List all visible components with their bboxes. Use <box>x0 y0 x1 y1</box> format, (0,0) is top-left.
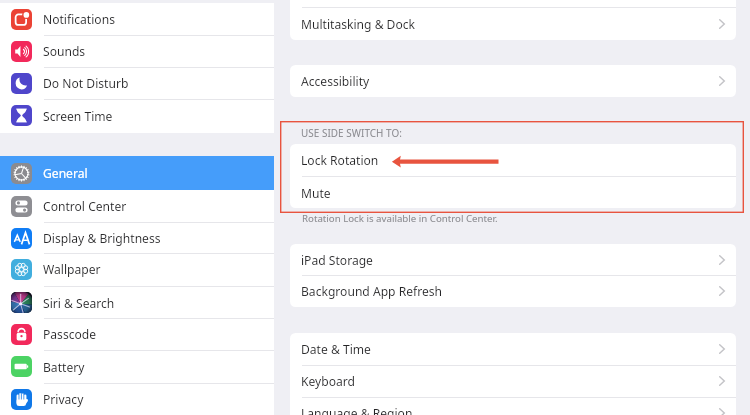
staticText: Wallpaper <box>43 261 101 277</box>
staticText: Accessibility <box>301 73 370 89</box>
staticText: Rotation Lock is available in Control Ce… <box>302 212 498 225</box>
button[interactable]: Passcode <box>0 318 274 350</box>
staticText: Multitasking & Dock <box>301 16 416 32</box>
staticText: Date & Time <box>301 341 371 357</box>
button[interactable]: iPad Storage <box>290 244 736 275</box>
button[interactable]: Display & Brightness <box>0 222 274 254</box>
staticText: Keyboard <box>301 373 355 389</box>
staticText: Language & Region <box>301 405 413 415</box>
button[interactable]: Keyboard <box>290 365 736 397</box>
staticText: Sounds <box>43 43 86 59</box>
button[interactable]: Accessibility <box>290 65 736 97</box>
button[interactable]: Lock Rotation <box>290 144 736 176</box>
staticText: USE SIDE SWITCH TO: <box>301 126 402 139</box>
button[interactable]: Date & Time <box>290 333 736 365</box>
staticText: Passcode <box>43 326 97 342</box>
staticText: Notifications <box>43 11 115 27</box>
staticText: Screen Time <box>43 108 113 124</box>
button[interactable]: Multitasking & Dock <box>290 7 736 40</box>
staticText: Siri & Search <box>43 295 115 311</box>
staticText: Control Center <box>43 198 127 214</box>
button[interactable]: Background App Refresh <box>290 275 736 307</box>
staticText: Mute <box>301 185 331 201</box>
button[interactable]: Screen Time <box>0 99 274 132</box>
button[interactable]: Notifications <box>0 3 274 35</box>
other: Callout arrow <box>388 153 502 171</box>
staticText: iPad Storage <box>301 252 373 268</box>
button[interactable]: Do Not Disturb <box>0 67 274 99</box>
staticText: Privacy <box>43 391 84 407</box>
button[interactable]: Wallpaper <box>0 253 274 285</box>
staticText: Background App Refresh <box>301 283 443 299</box>
staticText: Display & Brightness <box>43 230 161 246</box>
button[interactable]: Control Center <box>0 190 274 222</box>
button[interactable]: Sounds <box>0 35 274 67</box>
staticText: Lock Rotation <box>301 152 379 168</box>
button[interactable]: Battery <box>0 350 274 383</box>
staticText: Do Not Disturb <box>43 75 129 91</box>
button[interactable]: Language & Region <box>290 397 736 415</box>
staticText: General <box>43 165 88 181</box>
button[interactable]: Siri & Search <box>0 286 274 319</box>
button[interactable]: Privacy <box>0 383 274 415</box>
staticText: Battery <box>43 359 85 375</box>
button[interactable]: General <box>0 156 274 190</box>
button[interactable]: Mute <box>290 176 736 209</box>
